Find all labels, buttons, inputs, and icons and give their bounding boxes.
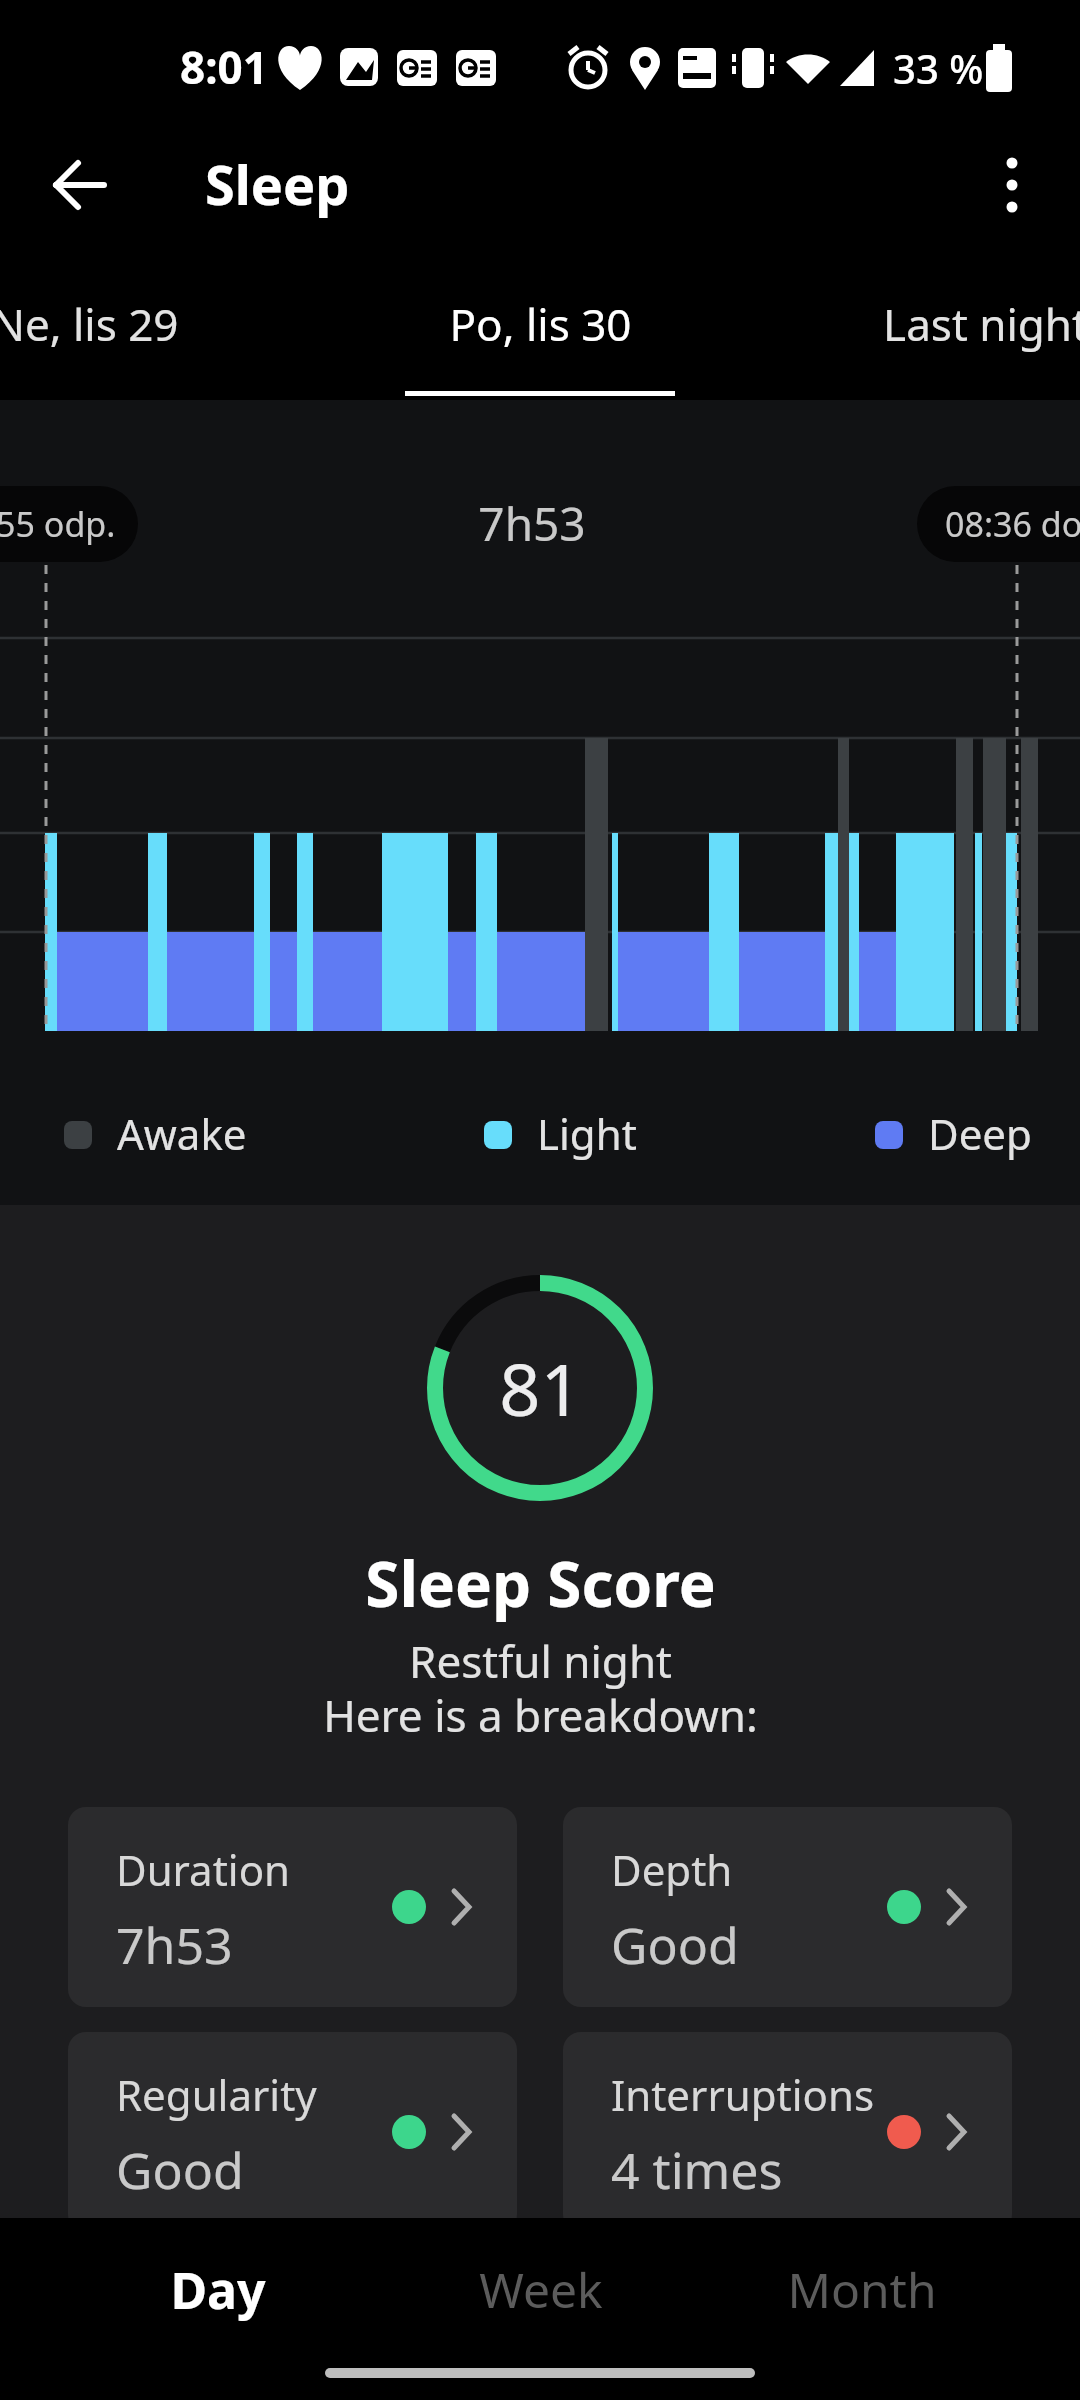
button[interactable]: Day — [143, 2252, 293, 2327]
staticText: Day — [170, 2256, 266, 2324]
button[interactable]: Depth — [563, 1807, 1012, 2007]
staticText: Restful night — [409, 1631, 672, 1691]
staticText: 33 % — [893, 41, 984, 95]
staticText: Interruptions — [611, 2066, 875, 2123]
staticText: Week — [479, 2257, 603, 2322]
staticText: Here is a breakdown: — [323, 1685, 758, 1745]
staticText: :55 odp. — [0, 501, 116, 547]
staticText: Duration — [116, 1841, 291, 1898]
button[interactable] — [40, 145, 120, 225]
button[interactable]: Regularity — [68, 2032, 517, 2232]
staticText: Good — [611, 1911, 739, 1979]
staticText: Ne, lis 29 — [0, 294, 179, 354]
staticText: Month — [787, 2257, 937, 2322]
button[interactable]: Po, lis 30 — [320, 291, 760, 357]
staticText: 4 times — [611, 2136, 783, 2204]
staticText: Po, lis 30 — [449, 294, 632, 354]
button[interactable] — [975, 145, 1055, 225]
staticText: 81 — [499, 1339, 582, 1437]
button[interactable]: Last night — [765, 291, 1080, 357]
staticText: Awake — [117, 1105, 247, 1162]
button[interactable]: Interruptions — [563, 2032, 1012, 2232]
staticText: 7h53 — [116, 1911, 233, 1979]
staticText: Sleep Score — [365, 1541, 716, 1625]
staticText: Deep — [928, 1105, 1032, 1162]
staticText: Depth — [611, 1841, 733, 1898]
button[interactable]: Week — [445, 2253, 637, 2325]
button[interactable]: Month — [742, 2253, 982, 2325]
staticText: Good — [116, 2136, 244, 2204]
button[interactable]: Duration — [68, 1807, 517, 2007]
staticText: 7h53 — [478, 492, 586, 555]
staticText: Last night — [883, 294, 1080, 354]
staticText: Regularity — [116, 2066, 317, 2123]
staticText: Light — [537, 1105, 637, 1162]
button[interactable]: Ne, lis 29 — [0, 291, 305, 357]
staticText: Sleep — [205, 147, 350, 221]
staticText: 8:01 — [180, 37, 268, 97]
staticText: 08:36 dop — [945, 501, 1080, 547]
